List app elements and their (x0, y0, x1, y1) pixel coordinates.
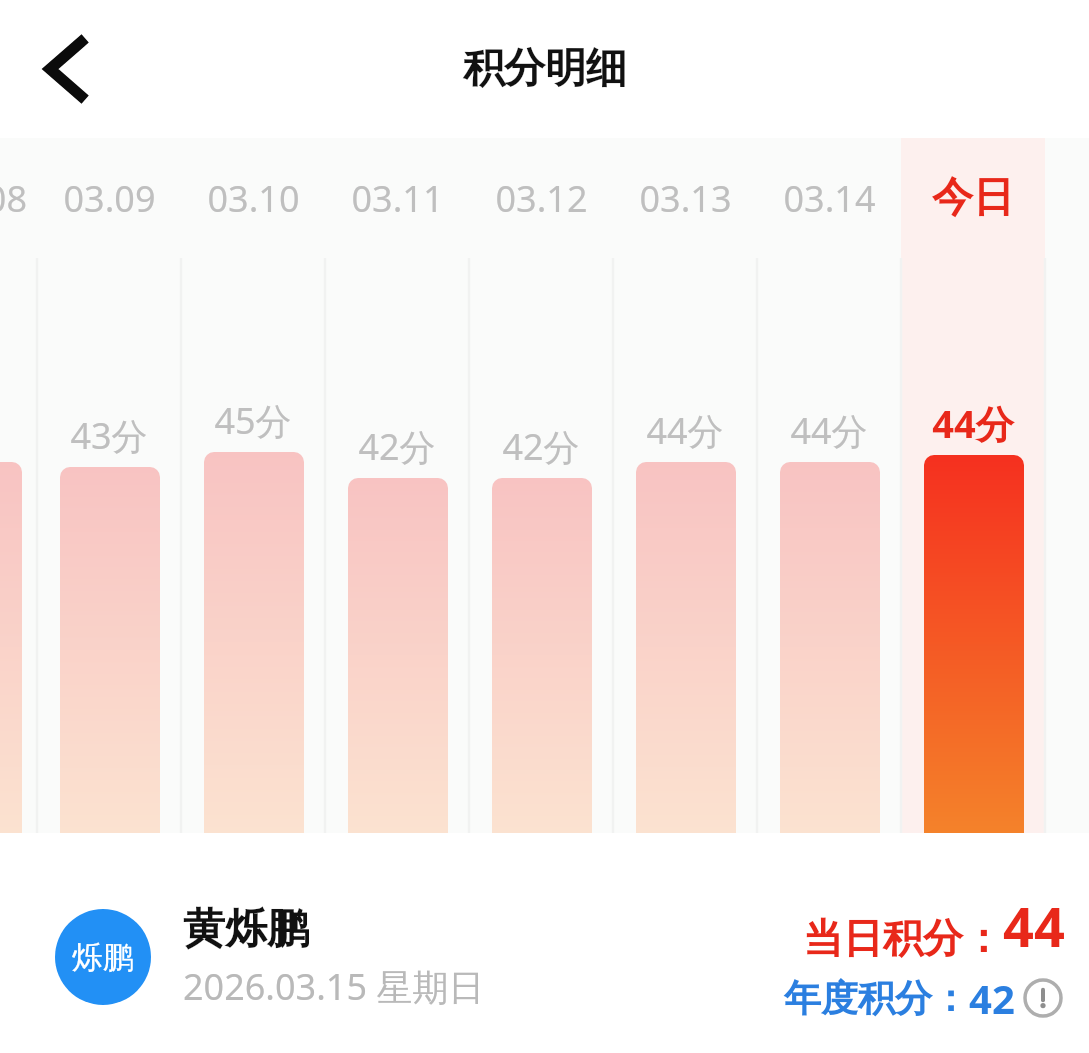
staticText: 03.13 (639, 174, 732, 223)
staticText: 44分 (932, 397, 1014, 449)
button[interactable] (636, 462, 736, 833)
button[interactable] (780, 462, 880, 833)
staticText: 44分 (790, 406, 868, 455)
button[interactable]: 今日 (901, 168, 1045, 228)
button[interactable]: 03.13 (613, 168, 757, 228)
staticText: 03.09 (63, 174, 156, 223)
button[interactable] (204, 452, 304, 833)
staticText: 44分 (646, 406, 724, 455)
staticText: 42 (969, 971, 1015, 1025)
staticText: 43分 (70, 411, 148, 460)
staticText: 当日积分： (803, 913, 1003, 963)
staticText: 44 (1003, 889, 1065, 963)
button[interactable]: 年度积分： (784, 971, 1065, 1025)
button[interactable]: 返回 (20, 25, 108, 113)
button[interactable]: 03.12 (469, 168, 613, 228)
staticText: 年度积分： (784, 975, 969, 1022)
staticText: 42分 (358, 422, 436, 471)
staticText: 45分 (214, 396, 292, 445)
staticText: 烁鹏 (72, 938, 134, 977)
staticText: 积分明细 (463, 43, 627, 95)
staticText: 今日 (932, 172, 1014, 224)
button[interactable] (60, 467, 160, 833)
staticText: 42分 (502, 422, 580, 471)
button[interactable] (348, 478, 448, 833)
button[interactable]: 烁鹏 (55, 903, 485, 1011)
staticText: 03.12 (495, 174, 588, 223)
button[interactable] (492, 478, 592, 833)
staticText: 2026.03.15 星期日 (183, 962, 485, 1011)
button[interactable]: 03.09 (37, 168, 181, 228)
button[interactable]: 03.14 (757, 168, 901, 228)
button[interactable] (924, 455, 1024, 833)
other: 积分说明 (1021, 976, 1065, 1020)
button[interactable]: 03.10 (181, 168, 325, 228)
staticText: 03.10 (207, 174, 300, 223)
button[interactable]: 03.11 (325, 168, 469, 228)
staticText: 03.14 (783, 174, 876, 223)
staticText: 03.08 (0, 174, 28, 223)
staticText: 黄烁鹏 (183, 903, 309, 956)
staticText: 03.11 (351, 174, 444, 223)
